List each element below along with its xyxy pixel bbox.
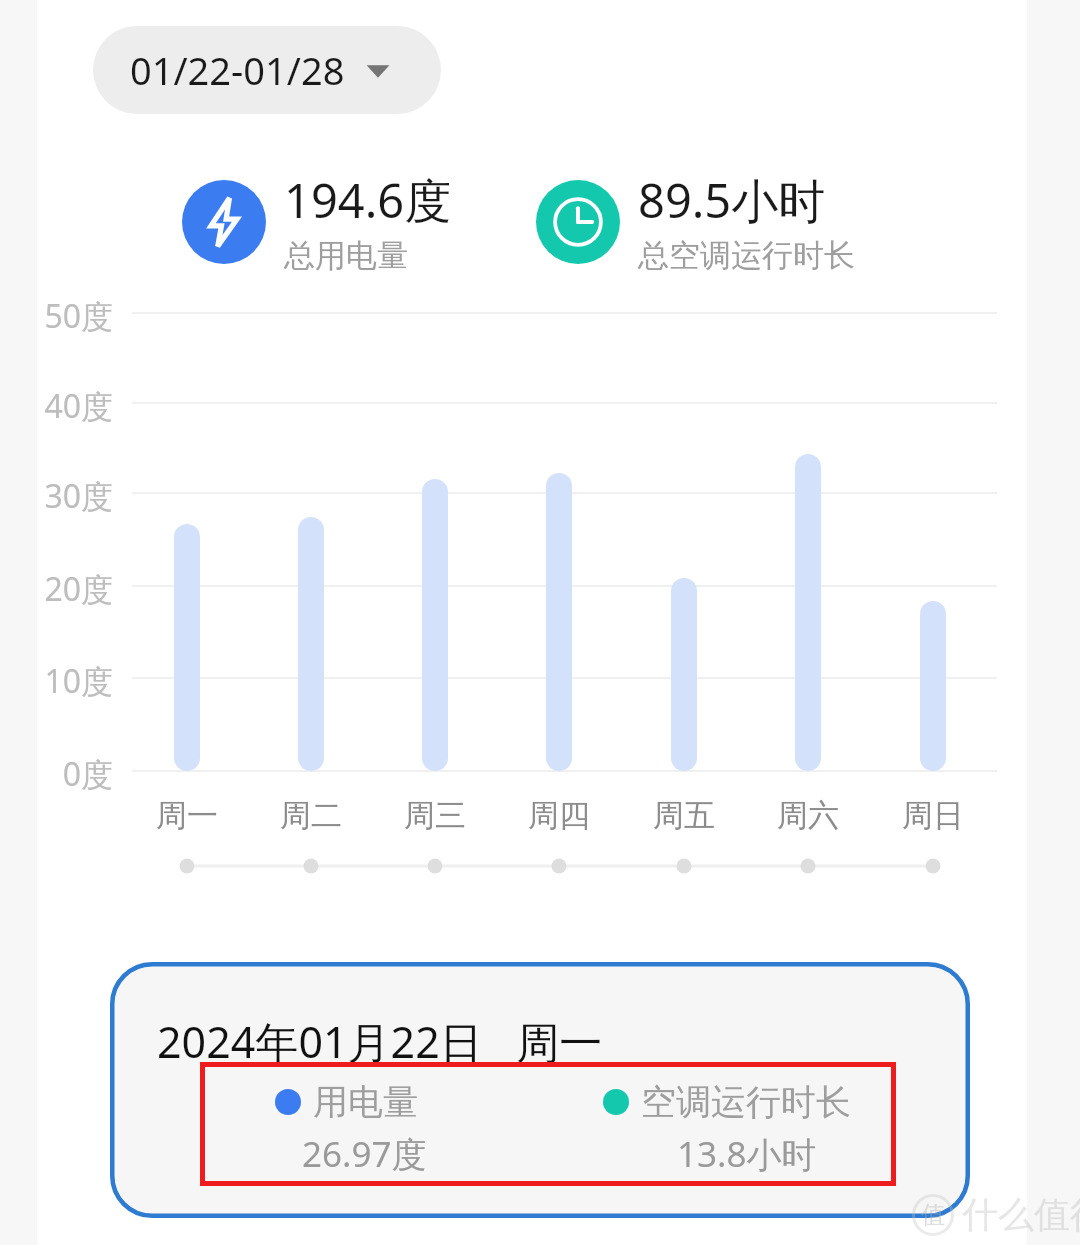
staticText: 什么值得买 — [962, 1192, 1080, 1237]
staticText: 0度 — [21, 752, 113, 796]
staticText: 10度 — [21, 659, 113, 703]
button[interactable]: 周三 — [375, 796, 495, 835]
button[interactable]: Total electricity — [182, 168, 452, 275]
staticText: 值 — [921, 1200, 945, 1230]
staticText: 194.6度 — [284, 168, 452, 232]
staticText: 40度 — [21, 384, 113, 428]
staticText: 30度 — [21, 474, 113, 518]
button[interactable]: 周五 — [624, 796, 744, 835]
other: Total AC runtime — [536, 180, 620, 264]
staticText: 01/22-01/28 — [130, 44, 345, 96]
staticText: 总用电量 — [284, 236, 408, 275]
button[interactable]: 01/22-01/28 — [93, 26, 441, 114]
staticText: 周四 — [499, 796, 619, 835]
button[interactable]: Total AC runtime — [536, 168, 855, 275]
staticText: 周一 — [127, 796, 247, 835]
staticText: 空调运行时长 — [641, 1080, 851, 1124]
button[interactable]: 周日 — [873, 796, 993, 835]
button[interactable]: 周四 — [499, 796, 619, 835]
staticText: 2024年01月22日 周一 — [157, 1012, 603, 1071]
staticText: 总空调运行时长 — [638, 236, 855, 275]
staticText: 周五 — [624, 796, 744, 835]
button[interactable]: 周二 — [251, 796, 371, 835]
staticText: 89.5小时 — [638, 168, 826, 232]
staticText: 50度 — [21, 294, 113, 338]
staticText: 周日 — [873, 796, 993, 835]
button[interactable]: 周一 — [127, 796, 247, 835]
staticText: 周三 — [375, 796, 495, 835]
other: Total electricity — [182, 180, 266, 264]
staticText: 用电量 — [313, 1080, 418, 1124]
staticText: 13.8小时 — [677, 1130, 817, 1178]
staticText: 20度 — [21, 567, 113, 611]
staticText: 周二 — [251, 796, 371, 835]
button[interactable]: 周六 — [748, 796, 868, 835]
staticText: 周六 — [748, 796, 868, 835]
staticText: 26.97度 — [302, 1130, 427, 1178]
button[interactable] — [110, 962, 970, 1218]
